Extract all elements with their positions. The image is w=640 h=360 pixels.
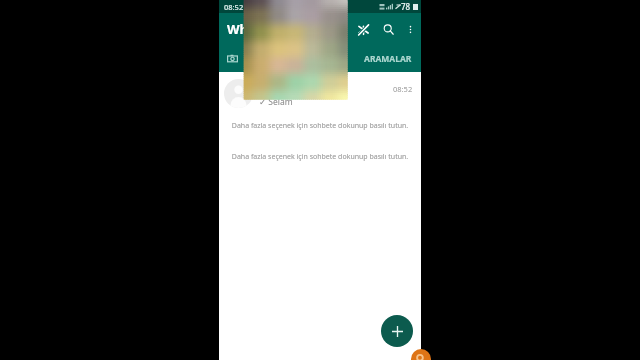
button[interactable]: More options — [401, 20, 419, 38]
staticText: Daha fazla seçenek için sohbete dokunup … — [225, 121, 415, 131]
staticText: ✓ Selam — [259, 96, 293, 108]
button[interactable]: …06 — [219, 78, 421, 109]
button[interactable]: Camera — [219, 45, 245, 72]
staticText: Daha fazla seçenek için sohbete dokunup … — [225, 152, 415, 162]
button[interactable]: Search — [377, 18, 399, 40]
button[interactable]: New chat — [381, 315, 413, 347]
staticText: 08:52 — [224, 2, 244, 12]
staticText: 08:52 — [393, 84, 413, 94]
staticText: 78 — [401, 1, 411, 12]
staticText: …06 — [259, 80, 281, 95]
staticText: WhatsApp — [227, 20, 294, 38]
button[interactable]: ARAMALAR — [364, 53, 412, 65]
button[interactable]: Broadcast off — [352, 18, 374, 40]
